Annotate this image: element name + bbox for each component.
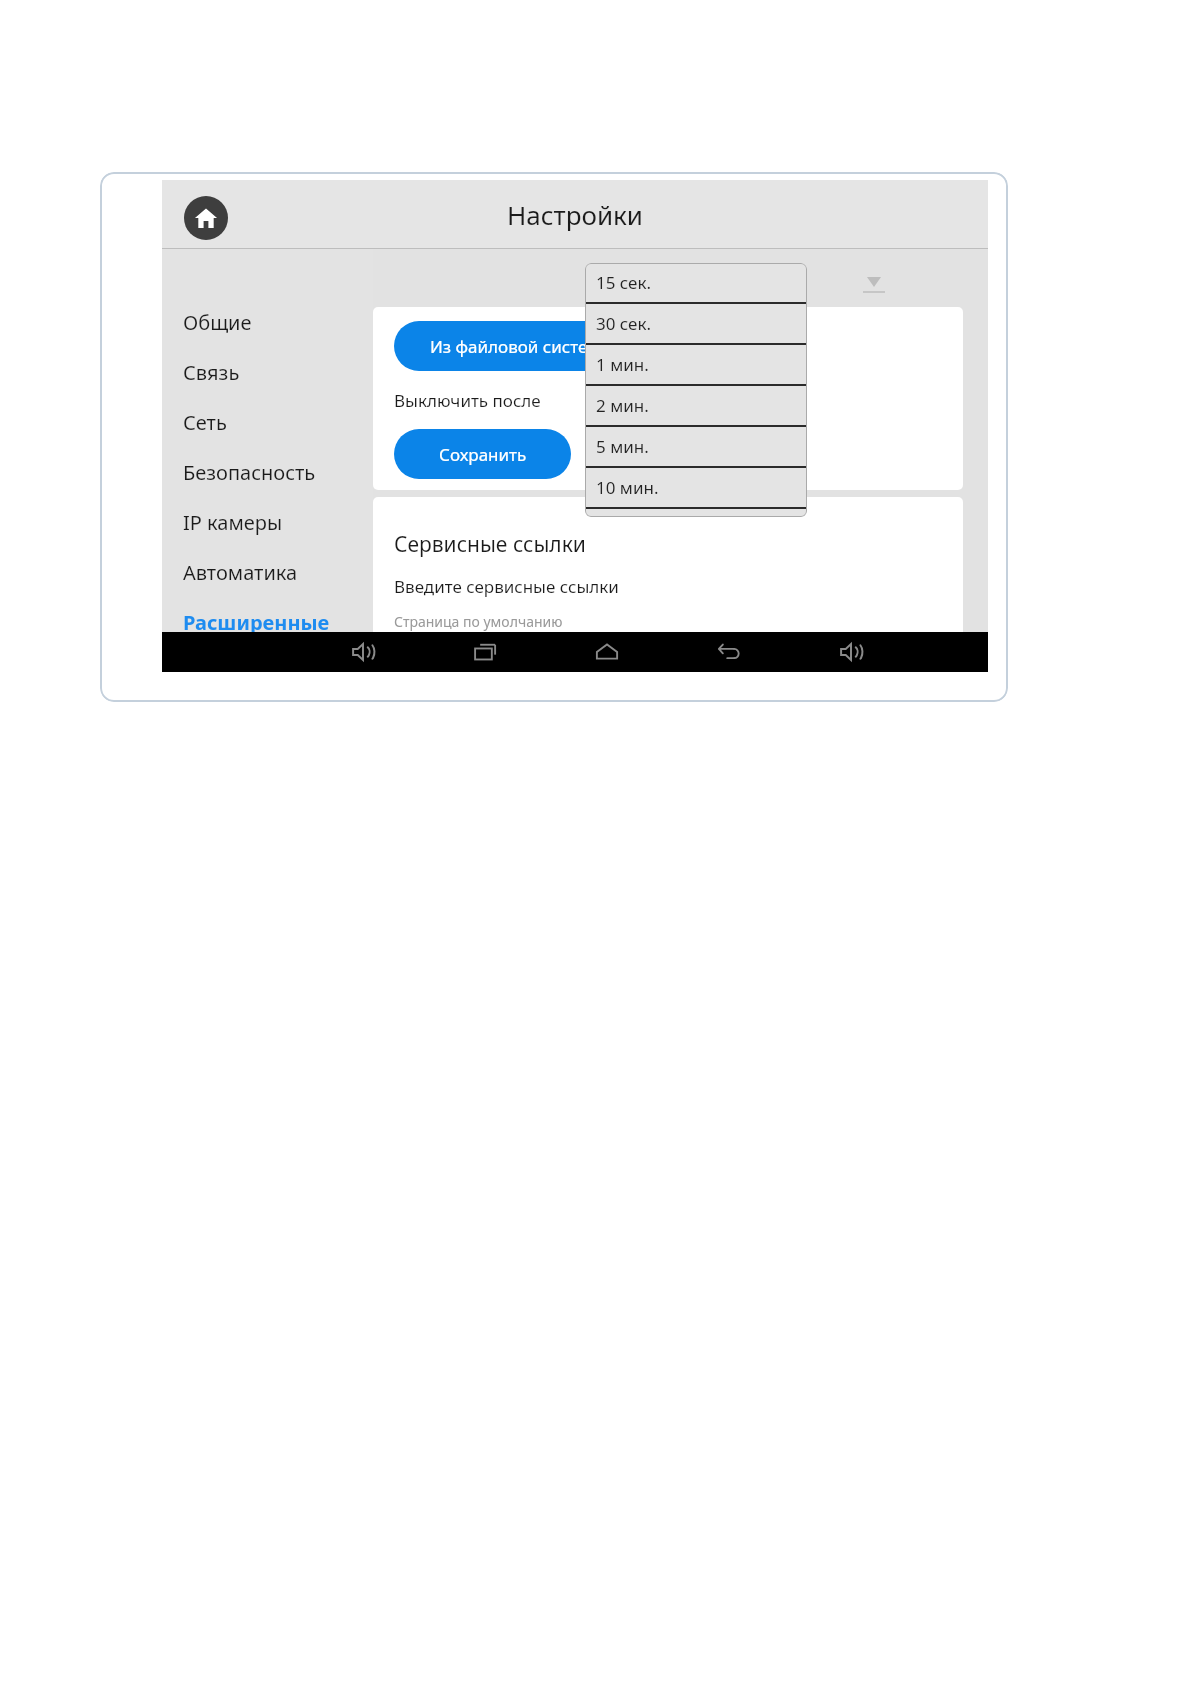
staticText: 15 сек. xyxy=(596,271,652,294)
staticText: 10 мин. xyxy=(596,476,659,499)
button[interactable]: Сеть xyxy=(162,397,373,447)
button[interactable]: 10 мин. xyxy=(585,468,807,507)
button[interactable]: Volume up xyxy=(828,632,874,672)
button[interactable]: 2 мин. xyxy=(585,386,807,425)
staticText: Расширенные xyxy=(183,609,330,636)
button[interactable]: Сохранить xyxy=(394,429,571,479)
button[interactable]: Из файловой системы xyxy=(394,321,650,371)
button[interactable]: 1 мин. xyxy=(585,345,807,384)
staticText: Общие xyxy=(183,309,252,336)
staticText: 30 сек. xyxy=(596,312,652,335)
staticText: Безопасность xyxy=(183,459,316,486)
button[interactable]: Расширенные xyxy=(162,597,373,647)
button[interactable]: Общие xyxy=(162,297,373,347)
staticText: IP камеры xyxy=(183,509,283,536)
button[interactable]: Home xyxy=(584,632,630,672)
staticText: 1 мин. xyxy=(596,353,649,376)
staticText: Автоматика xyxy=(183,559,298,586)
button[interactable]: IP камеры xyxy=(162,497,373,547)
staticText: Настройки xyxy=(162,197,988,232)
button[interactable]: Связь xyxy=(162,347,373,397)
button[interactable]: Recent apps xyxy=(462,632,508,672)
button[interactable] xyxy=(585,509,807,517)
button[interactable]: Back xyxy=(706,632,752,672)
staticText: Выключить после xyxy=(394,389,541,412)
button[interactable]: 15 сек. xyxy=(585,263,807,302)
button[interactable]: Volume down xyxy=(340,632,386,672)
staticText: Введите сервисные ссылки xyxy=(394,575,619,598)
staticText: Связь xyxy=(183,359,240,386)
staticText: Из файловой системы xyxy=(430,335,614,358)
staticText: Сохранить xyxy=(439,443,527,466)
staticText: Сеть xyxy=(183,409,227,436)
button[interactable]: Home xyxy=(184,196,228,240)
staticText: 2 мин. xyxy=(596,394,649,417)
button[interactable]: 5 мин. xyxy=(585,427,807,466)
staticText: Сервисные ссылки xyxy=(394,530,586,559)
staticText: http://www.google.com xyxy=(394,639,594,664)
button[interactable]: Безопасность xyxy=(162,447,373,497)
staticText: Страница по умолчанию xyxy=(394,612,563,631)
staticText: 5 мин. xyxy=(596,435,649,458)
button[interactable]: Автоматика xyxy=(162,547,373,597)
button[interactable]: 30 сек. xyxy=(585,304,807,343)
